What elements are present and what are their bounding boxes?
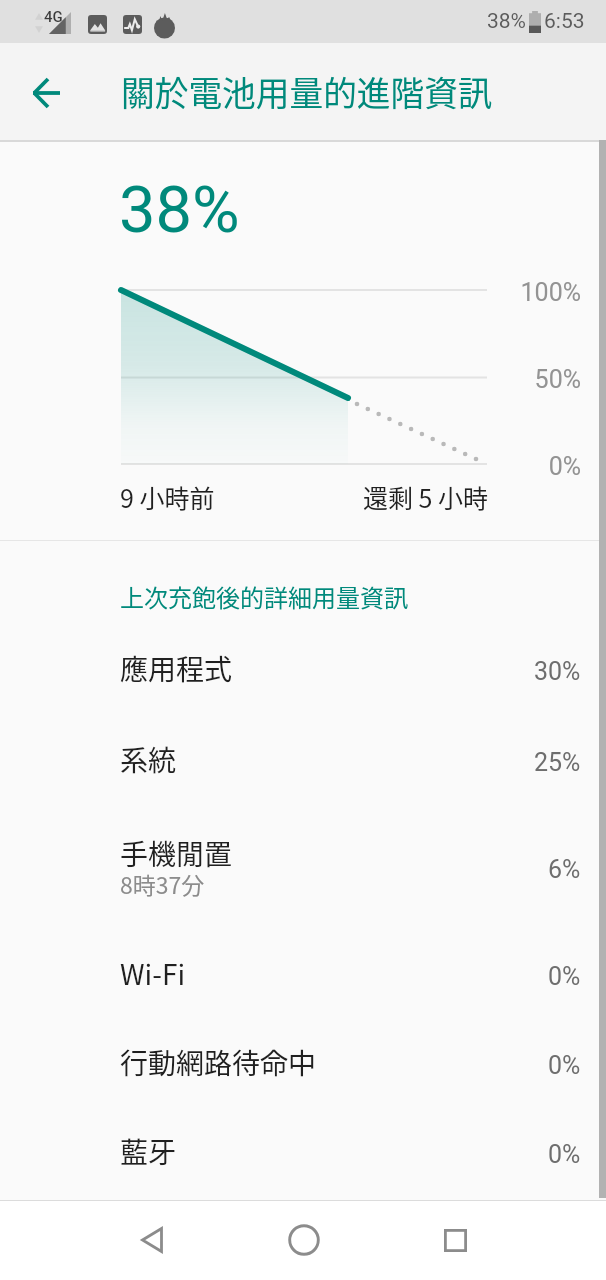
staticText: 0% <box>548 962 581 991</box>
button[interactable]: 行動網路待命中 <box>0 1018 606 1107</box>
button[interactable]: Home <box>261 1200 346 1280</box>
staticText: 上次充飽後的詳細用量資訊 <box>120 579 408 614</box>
button[interactable]: Back <box>10 55 84 129</box>
staticText: 6:53 <box>544 9 585 34</box>
staticText: 行動網路待命中 <box>120 1042 317 1083</box>
button[interactable]: Back <box>109 1200 194 1280</box>
button[interactable]: Wi-Fi <box>0 928 606 1018</box>
staticText: 手機閒置 <box>120 833 233 874</box>
staticText: 38% <box>487 9 526 34</box>
staticText: 6% <box>548 855 581 884</box>
staticText: 8時37分 <box>120 867 205 900</box>
staticText: 應用程式 <box>120 648 233 689</box>
staticText: 還剩 5 小時 <box>363 479 489 515</box>
button[interactable]: 系統 <box>0 713 606 805</box>
button[interactable]: Recent apps <box>413 1200 498 1280</box>
staticText: 100% <box>520 278 581 307</box>
staticText: 0% <box>548 452 581 481</box>
button[interactable]: 應用程式 <box>0 623 606 713</box>
staticText: 9 小時前 <box>120 479 215 515</box>
button[interactable]: 藍牙 <box>0 1107 606 1195</box>
staticText: 0% <box>548 1051 581 1080</box>
staticText: 藍牙 <box>120 1131 177 1172</box>
staticText: 30% <box>534 657 581 686</box>
staticText: 50% <box>534 365 581 394</box>
staticText: Wi-Fi <box>120 953 186 994</box>
staticText: 關於電池用量的進階資訊 <box>121 67 492 116</box>
staticText: 38% <box>119 172 240 248</box>
staticText: 25% <box>534 748 581 777</box>
staticText: 系統 <box>120 739 177 780</box>
staticText: 0% <box>548 1140 581 1169</box>
staticText: 4G <box>44 8 63 26</box>
button[interactable]: 手機閒置 <box>0 805 606 928</box>
